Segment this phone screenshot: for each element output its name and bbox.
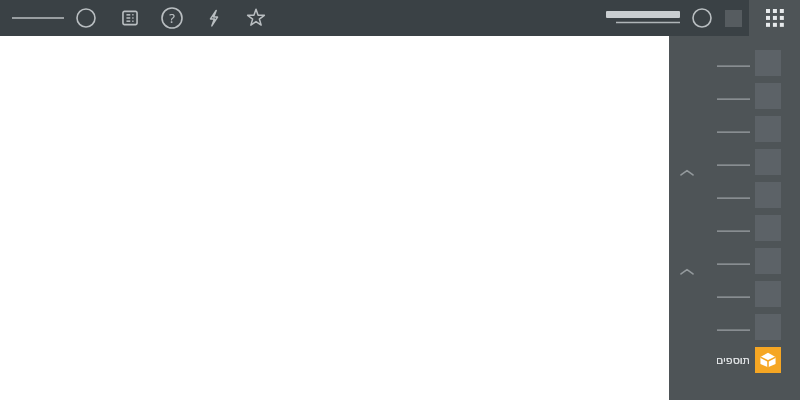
button[interactable]: Panel 5 — [669, 182, 800, 208]
button[interactable]: Panel 4 — [669, 149, 800, 175]
button[interactable]: Color — [718, 0, 748, 36]
button[interactable]: Circle — [70, 0, 102, 36]
button[interactable]: Opacity — [686, 0, 718, 36]
button[interactable]: Panel 9 — [669, 314, 800, 340]
button[interactable]: Panel 1 — [669, 50, 800, 76]
staticText: ? — [169, 9, 175, 27]
button[interactable]: Panel 8 — [669, 281, 800, 307]
button[interactable]: Favorite — [240, 0, 272, 36]
button[interactable]: Divider — [12, 0, 64, 36]
button[interactable]: Panel 7 — [669, 248, 800, 274]
button[interactable]: Size slider — [602, 0, 684, 36]
button[interactable]: List — [114, 0, 146, 36]
button[interactable]: תוספים — [669, 347, 800, 373]
button[interactable]: Panel 2 — [669, 83, 800, 109]
button[interactable]: Panel 3 — [669, 116, 800, 142]
button[interactable]: Quick actions — [198, 0, 230, 36]
staticText: תוספים — [716, 354, 750, 367]
button[interactable]: Collapse — [677, 163, 697, 183]
button[interactable]: Help — [156, 0, 188, 36]
button[interactable]: Apps — [749, 0, 800, 36]
button[interactable]: Collapse — [677, 262, 697, 282]
button[interactable]: Panel 6 — [669, 215, 800, 241]
